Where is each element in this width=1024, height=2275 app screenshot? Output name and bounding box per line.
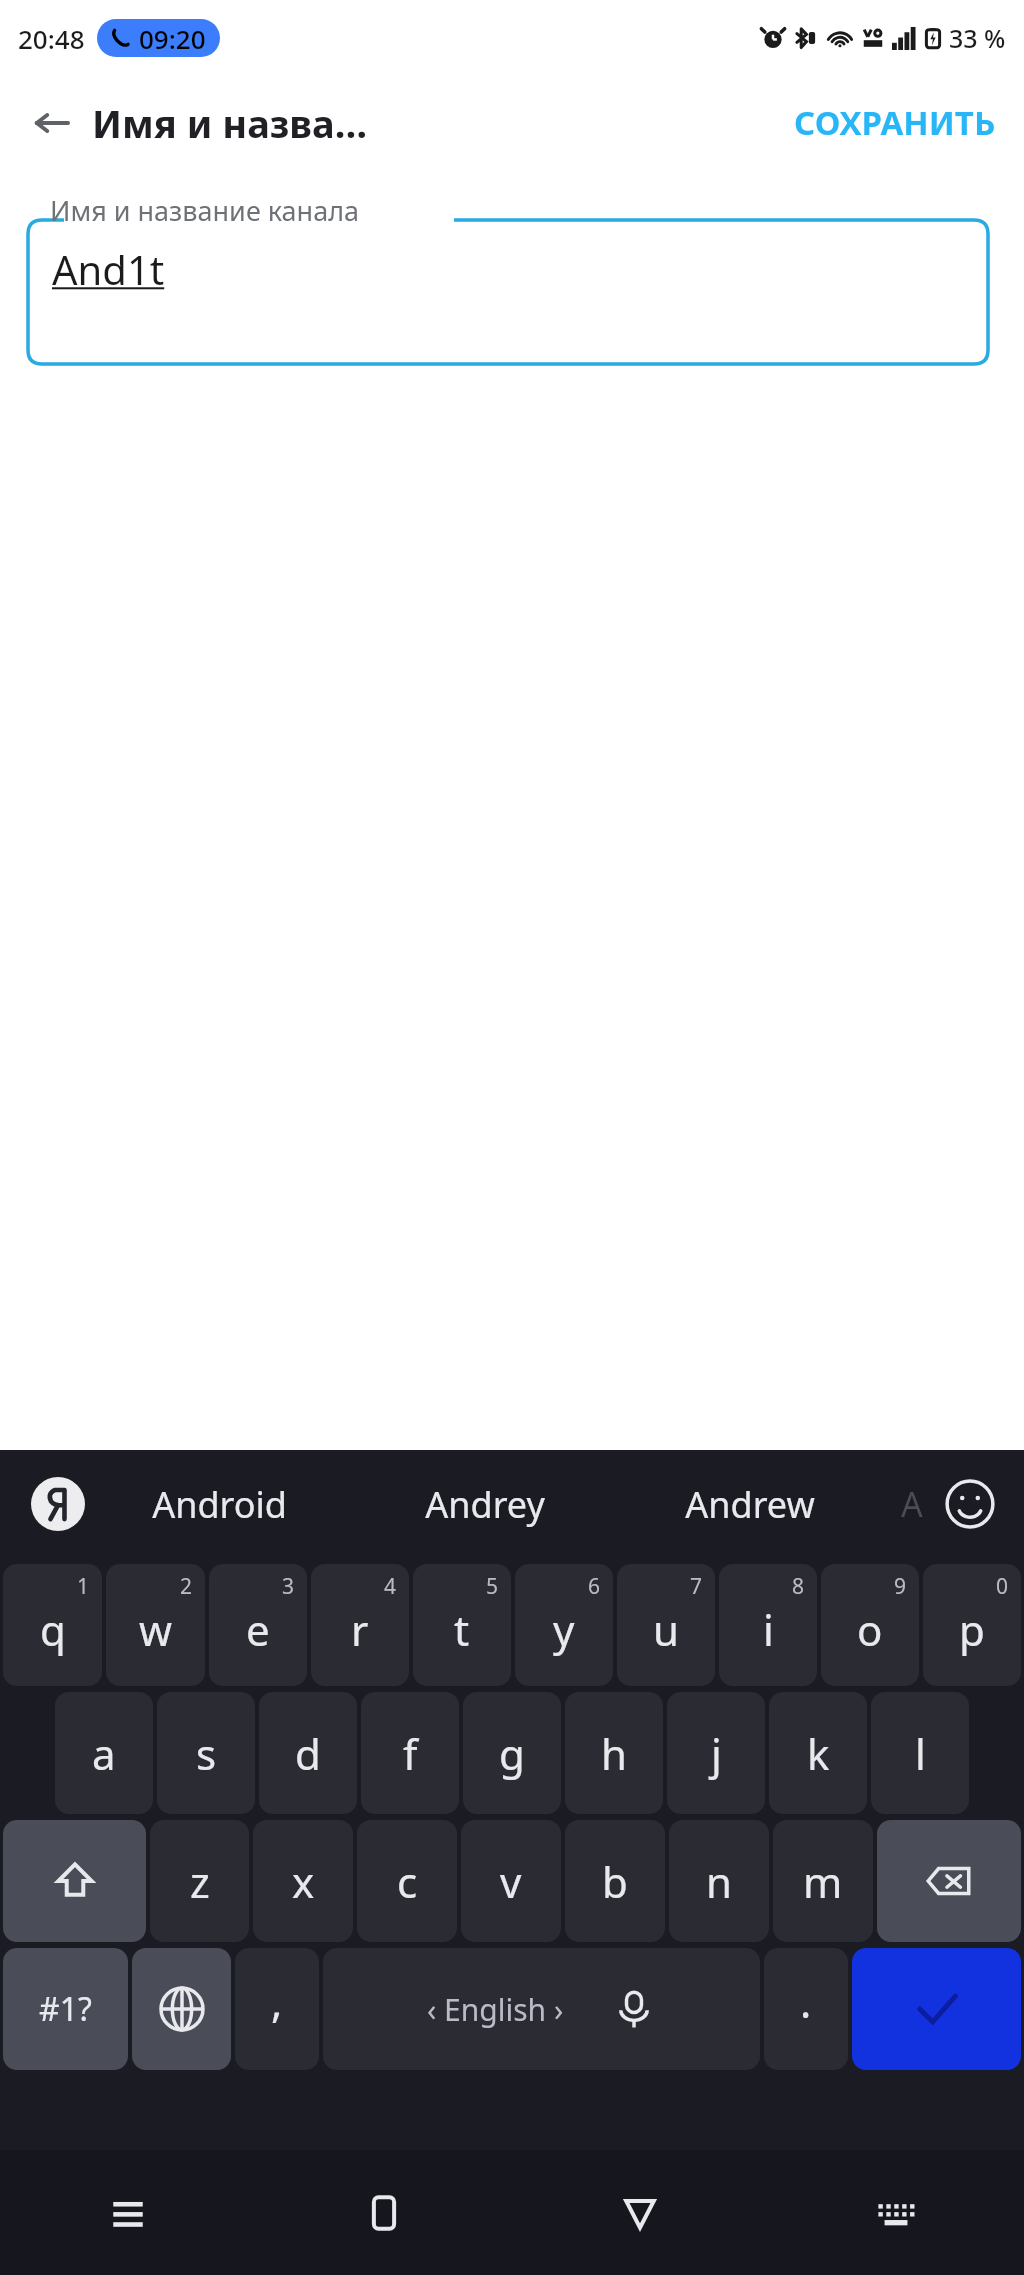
staticText: b — [602, 1853, 628, 1910]
staticText: , — [271, 1973, 283, 2030]
button[interactable]: Back — [20, 91, 84, 155]
staticText: A — [901, 1481, 923, 1527]
button[interactable]: e — [209, 1564, 307, 1686]
button[interactable]: Backspace — [877, 1820, 1021, 1942]
button[interactable]: i — [719, 1564, 817, 1686]
staticText: d — [295, 1725, 321, 1782]
button[interactable]: u — [617, 1564, 715, 1686]
staticText: 2 — [180, 1572, 193, 1601]
button[interactable]: Android — [86, 1450, 352, 1558]
staticText: 9 — [894, 1572, 907, 1601]
button[interactable]: СОХРАНИТЬ — [788, 90, 1002, 155]
staticText: 09:20 — [139, 21, 206, 56]
staticText: . — [800, 1973, 812, 2030]
staticText: q — [40, 1601, 66, 1658]
button[interactable]: w — [106, 1564, 205, 1686]
button[interactable]: Keyboard settings — [30, 1476, 86, 1532]
button[interactable]: n — [669, 1820, 769, 1942]
button[interactable]: j — [667, 1692, 765, 1814]
button[interactable]: Enter — [852, 1948, 1021, 2070]
staticText: g — [499, 1725, 525, 1782]
staticText: s — [196, 1725, 217, 1782]
staticText: Andrew — [685, 1480, 815, 1529]
button[interactable]: #1? — [3, 1948, 128, 2070]
button[interactable]: . — [764, 1948, 848, 2070]
staticText: 4 — [384, 1572, 397, 1601]
button[interactable]: Space — [323, 1948, 760, 2070]
button[interactable]: f — [361, 1692, 459, 1814]
staticText: 6 — [588, 1572, 601, 1601]
staticText: Android — [152, 1480, 287, 1529]
staticText: p — [959, 1601, 985, 1658]
staticText: 5 — [486, 1572, 499, 1601]
staticText: f — [403, 1725, 418, 1782]
button[interactable]: g — [463, 1692, 561, 1814]
staticText: r — [351, 1601, 369, 1658]
button[interactable]: r — [311, 1564, 409, 1686]
button[interactable]: Recent apps — [0, 2150, 256, 2275]
button[interactable]: v — [461, 1820, 561, 1942]
staticText: СОХРАНИТЬ — [794, 100, 996, 145]
staticText: #1? — [39, 1987, 92, 2031]
staticText: 20:48 — [18, 21, 85, 56]
staticText: Имя и название канала — [50, 192, 360, 229]
staticText: 1 — [77, 1572, 90, 1601]
button[interactable]: Hide keyboard — [768, 2150, 1024, 2275]
staticText: y — [553, 1601, 575, 1658]
staticText: v — [500, 1853, 522, 1910]
button[interactable]: m — [773, 1820, 873, 1942]
staticText: 3 — [282, 1572, 295, 1601]
staticText: o — [857, 1601, 883, 1658]
staticText: a — [92, 1725, 116, 1782]
button[interactable]: Имя и название канала — [28, 194, 988, 364]
staticText: z — [190, 1853, 210, 1910]
button[interactable]: Emoji — [942, 1476, 998, 1532]
button[interactable]: t — [413, 1564, 511, 1686]
staticText: 33 % — [949, 21, 1006, 55]
button[interactable]: h — [565, 1692, 663, 1814]
button[interactable]: s — [157, 1692, 255, 1814]
staticText: l — [915, 1725, 926, 1782]
staticText: n — [706, 1853, 732, 1910]
button[interactable]: y — [515, 1564, 613, 1686]
staticText: ‹ English › — [427, 1989, 564, 2030]
button[interactable]: Back — [512, 2150, 768, 2275]
button[interactable]: a — [55, 1692, 153, 1814]
button[interactable]: , — [235, 1948, 319, 2070]
staticText: k — [807, 1725, 830, 1782]
button[interactable]: x — [253, 1820, 353, 1942]
button[interactable]: b — [565, 1820, 665, 1942]
button[interactable]: Home — [256, 2150, 512, 2275]
staticText: i — [763, 1601, 774, 1658]
staticText: Andrey — [425, 1480, 545, 1529]
button[interactable]: Shift — [3, 1820, 146, 1942]
button[interactable]: Text style — [882, 1450, 942, 1558]
button[interactable]: l — [871, 1692, 969, 1814]
staticText: e — [246, 1601, 270, 1658]
button[interactable]: Andrey — [352, 1450, 617, 1558]
button[interactable]: k — [769, 1692, 867, 1814]
button[interactable]: p — [923, 1564, 1021, 1686]
staticText: 8 — [792, 1572, 805, 1601]
button[interactable]: q — [3, 1564, 102, 1686]
button[interactable]: d — [259, 1692, 357, 1814]
staticText: x — [292, 1853, 315, 1910]
staticText: m — [803, 1853, 843, 1910]
staticText: t — [454, 1601, 470, 1658]
staticText: w — [139, 1601, 173, 1658]
staticText: Имя и назва… — [92, 97, 368, 149]
button[interactable]: Change language — [132, 1948, 231, 2070]
staticText: And1t — [52, 242, 165, 296]
staticText: 0 — [996, 1572, 1009, 1601]
button[interactable]: z — [150, 1820, 249, 1942]
staticText: j — [711, 1725, 722, 1782]
staticText: 7 — [690, 1572, 703, 1601]
button[interactable]: c — [357, 1820, 457, 1942]
staticText: u — [653, 1601, 679, 1658]
button[interactable]: Andrew — [617, 1450, 882, 1558]
button[interactable]: o — [821, 1564, 919, 1686]
staticText: h — [601, 1725, 627, 1782]
staticText: c — [397, 1853, 418, 1910]
